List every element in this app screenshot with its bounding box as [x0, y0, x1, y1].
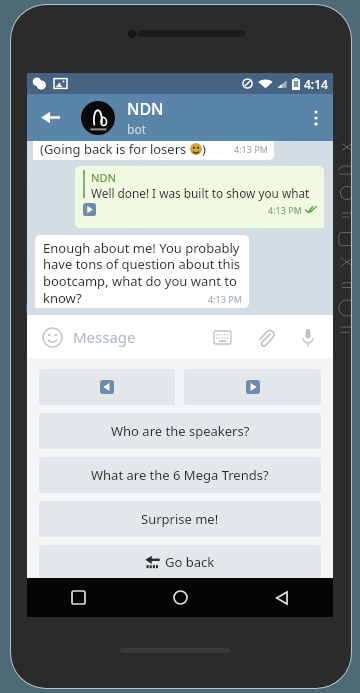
- staticText: Well done! I was built to show you what …: [91, 185, 317, 201]
- button[interactable]: [184, 369, 321, 405]
- button[interactable]: Surprise me!: [39, 501, 321, 537]
- button[interactable]: NDN: [75, 166, 324, 228]
- staticText: NDN: [91, 170, 117, 185]
- button[interactable]: Keyboard: [210, 325, 234, 349]
- button[interactable]: More options: [299, 94, 333, 141]
- staticText: (Going back is for losers: [40, 141, 190, 158]
- button[interactable]: Go back: [39, 545, 321, 578]
- staticText: Enough about me! You probably have tons …: [43, 239, 242, 307]
- staticText: 4:13 PM: [268, 204, 302, 216]
- staticText: 4:13 PM: [208, 293, 242, 305]
- button[interactable]: Home: [129, 578, 231, 617]
- button[interactable]: Voice message: [296, 325, 320, 349]
- staticText: 4:14: [304, 76, 328, 92]
- button[interactable]: Recents: [27, 578, 129, 617]
- button[interactable]: Who are the speakers?: [39, 413, 321, 449]
- staticText: What are the 6 Mega Trends?: [91, 466, 269, 484]
- staticText: Go back: [165, 553, 215, 571]
- staticText: Who are the speakers?: [111, 422, 250, 440]
- staticText: Surprise me!: [141, 510, 219, 528]
- staticText: ): [202, 141, 206, 158]
- button[interactable]: (Going back is for losers: [33, 141, 274, 160]
- button[interactable]: Emoji: [40, 325, 64, 349]
- staticText: 4:13 PM: [234, 143, 268, 155]
- button[interactable]: Attach: [253, 325, 277, 349]
- button[interactable]: Enough about me! You probably have tons …: [35, 235, 249, 308]
- staticText: Message: [73, 327, 136, 347]
- staticText: bot: [127, 121, 146, 137]
- button[interactable]: Back: [27, 94, 73, 141]
- button[interactable]: What are the 6 Mega Trends?: [39, 457, 321, 493]
- button[interactable]: Back: [231, 578, 333, 617]
- staticText: NDN: [127, 98, 164, 120]
- button[interactable]: [39, 369, 175, 405]
